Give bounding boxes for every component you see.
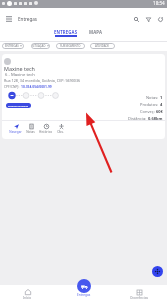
- button[interactable]: Notas: [23, 123, 38, 134]
- button[interactable]: Início: [0, 285, 55, 300]
- staticText: ENTREGAS: [54, 29, 78, 35]
- button[interactable]: Pesquisar: [132, 15, 141, 24]
- staticText: MAPA: [89, 29, 103, 35]
- staticText: Conveç:: [140, 109, 156, 114]
- button[interactable]: ENTREGAS: [46, 29, 85, 38]
- button[interactable]: Obs.: [53, 123, 68, 134]
- button[interactable]: Atualizar: [156, 15, 165, 24]
- staticText: 10.354.054/0001-99: [21, 84, 52, 88]
- button[interactable]: Histórico: [38, 123, 53, 134]
- staticText: Início: [23, 296, 32, 300]
- button[interactable]: SUBSEGMENTO: [56, 43, 85, 49]
- staticText: Produtos:: [140, 102, 160, 107]
- staticText: ENTREGAS: [5, 44, 19, 48]
- button[interactable]: Ocorrências: [111, 285, 167, 300]
- staticText: Histórico: [39, 130, 52, 134]
- staticText: Obs.: [57, 130, 64, 134]
- staticText: 18:54: [153, 0, 165, 6]
- staticText: 4: [160, 102, 163, 107]
- button[interactable]: SITUAÇÃO: [31, 43, 50, 49]
- staticText: CPF/CNPJ:: [4, 84, 21, 88]
- staticText: ATIVIDADE: [95, 44, 110, 48]
- staticText: Notas:: [146, 95, 160, 100]
- button[interactable]: Filtrar: [144, 15, 153, 24]
- staticText: 1: [160, 95, 163, 100]
- staticText: Entregas: [77, 293, 91, 297]
- staticText: Navegar: [9, 130, 22, 134]
- staticText: Ocorrências: [130, 296, 148, 300]
- button[interactable]: Maxine tech: [2, 54, 165, 139]
- staticText: SITUAÇÃO: [32, 44, 46, 48]
- staticText: 6 - Maxine tech: [5, 72, 35, 78]
- staticText: Maxine tech: [4, 65, 35, 72]
- button[interactable]: MAPA: [85, 29, 107, 38]
- staticText: Notas: [26, 130, 35, 134]
- button[interactable]: Entregas: [64, 279, 104, 299]
- staticText: 60€: [156, 109, 163, 114]
- button[interactable]: ATIVIDADE: [90, 43, 115, 49]
- button[interactable]: ENTREGAS: [2, 43, 24, 49]
- staticText: 0.68km: [148, 116, 163, 121]
- button[interactable]: Navegar: [8, 123, 23, 134]
- staticText: SUBSEGMENTO: [60, 44, 81, 48]
- staticText: Distância:: [128, 116, 148, 121]
- button[interactable]: Menu: [3, 13, 15, 25]
- staticText: Entrega Pendente: [8, 104, 29, 107]
- button[interactable]: Mais opções: [152, 266, 163, 277]
- staticText: Rua 128, 34 mordida, Goiânia, CEP: 94900…: [4, 78, 81, 83]
- staticText: Entregas: [18, 16, 38, 22]
